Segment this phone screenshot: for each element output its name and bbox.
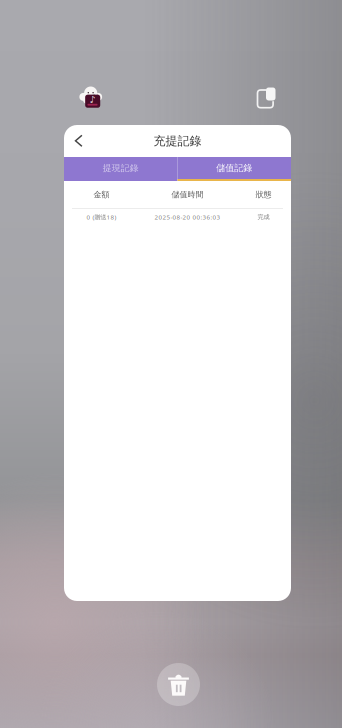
button[interactable]: 儲值記錄 — [177, 157, 291, 181]
button[interactable]: Delete — [157, 663, 200, 706]
staticText: 儲值記錄 — [216, 162, 252, 174]
staticText: 提現記錄 — [103, 162, 139, 174]
staticText: 0 (贈送18) — [86, 213, 116, 221]
staticText: 2025-08-20 00:36:03 — [154, 213, 220, 221]
staticText: 金額 — [93, 190, 109, 199]
button[interactable]: 提現記錄 — [64, 157, 177, 181]
staticText: ♪ — [90, 94, 96, 105]
button[interactable]: App icon — [79, 84, 102, 107]
staticText: 儲值時間 — [171, 190, 203, 199]
button[interactable]: Split screen — [256, 87, 278, 109]
staticText: 完成 — [257, 213, 269, 221]
staticText: 狀態 — [255, 190, 271, 199]
staticText: 充提記錄 — [153, 134, 201, 148]
button[interactable]: Back — [64, 125, 90, 157]
